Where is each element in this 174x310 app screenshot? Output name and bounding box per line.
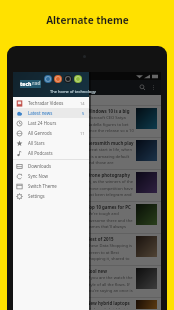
staticText: We're tough and awesome there and the ga…	[87, 211, 134, 229]
staticText: Sync Now	[28, 173, 48, 179]
staticText: All Podcasts	[28, 150, 53, 156]
staticText: 14	[80, 101, 85, 106]
staticText: Best of 2015	[87, 236, 114, 242]
staticText: Last 24 Hours	[28, 120, 57, 126]
staticText: All Stars	[28, 140, 45, 146]
button[interactable]: Switch Theme	[13, 181, 89, 191]
button[interactable]: Drone photography revealed	[13, 170, 161, 201]
staticText: in, as the winners of the drone competit…	[87, 179, 134, 197]
button[interactable]: Top 10 games for PC and	[13, 202, 161, 233]
staticText: These Data Shopping is screen to at Best…	[87, 243, 134, 261]
staticText: All Genrods	[28, 130, 52, 136]
button[interactable]: New hybrid laptops reviewed	[13, 298, 161, 310]
staticText: Great start in life, when it is a amazin…	[87, 147, 134, 165]
button[interactable]: Best of 2015	[13, 234, 161, 265]
button[interactable]: Aerosmith much play Xbox	[13, 138, 161, 169]
button[interactable]: Techradar Videos	[13, 98, 89, 108]
staticText: Windows 10 is a big deal	[87, 108, 134, 114]
button[interactable]: All Podcasts	[13, 148, 89, 158]
button[interactable]: Last 24 Hours	[13, 118, 89, 128]
staticText: Techradar Videos	[28, 100, 64, 106]
staticText: 11	[80, 131, 85, 136]
staticText: Alternate theme	[46, 13, 129, 27]
staticText: radar	[32, 80, 41, 88]
staticText: The home of technology	[50, 89, 96, 94]
staticText: 5	[82, 111, 85, 116]
staticText: and made flex like a bird	[16, 96, 62, 101]
staticText: Downloads	[28, 163, 51, 169]
button[interactable]: Latest news	[13, 108, 89, 118]
staticText: New hybrid laptops reviewed	[87, 300, 134, 306]
staticText: If you are the watch the style of all th…	[87, 275, 134, 293]
button[interactable]: Settings	[13, 191, 89, 201]
staticText: Cool new	[87, 268, 107, 274]
button[interactable]: More options	[148, 82, 159, 93]
staticText: Top 10 games for PC and	[87, 204, 134, 210]
button[interactable]: All Stars	[13, 138, 89, 148]
button[interactable]: All Genrods	[13, 128, 89, 138]
button[interactable]: Downloads	[13, 161, 89, 171]
staticText: Settings	[28, 193, 45, 199]
staticText: Latest news	[28, 110, 53, 116]
button[interactable]: Sync Now	[13, 171, 89, 181]
staticText: Aerosmith much play Xbox	[87, 140, 134, 146]
button[interactable]: Windows 10 is a big deal	[13, 106, 161, 137]
staticText: tech	[20, 81, 32, 88]
staticText: Drone photography revealed	[87, 172, 134, 178]
staticText: Switch Theme	[28, 183, 57, 189]
button[interactable]: Search	[137, 82, 148, 93]
staticText: We have hybrid that is all-new Hi touch …	[87, 307, 134, 309]
staticText: Microsoft CEO Satya Nadella figures to b…	[87, 115, 134, 133]
button[interactable]: Cool new	[13, 266, 161, 297]
